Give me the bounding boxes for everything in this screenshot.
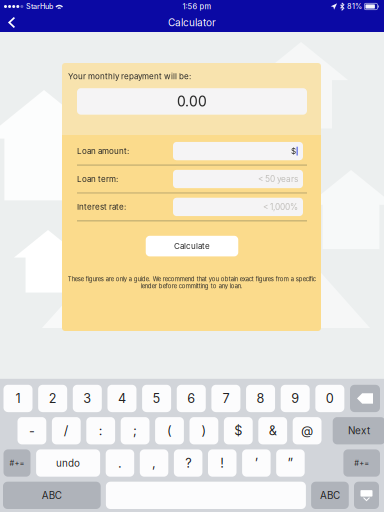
button[interactable]: ’ [242,449,271,477]
button[interactable]: @ [293,417,321,444]
staticText: : [99,423,103,438]
staticText: Loan term: [77,174,118,184]
button[interactable]: ? [174,449,202,477]
button[interactable]: ) [189,417,218,444]
button[interactable]: Back [0,13,28,32]
staticText: 0.00 [177,93,207,110]
staticText: Next [348,425,370,437]
button[interactable]: ABC [3,482,101,509]
staticText: #+= [354,458,369,467]
staticText: StarHub [26,2,53,11]
staticText: . [118,455,122,471]
staticText: @ [301,423,313,438]
staticText: < 1,000% [263,202,298,212]
staticText: #+= [9,458,24,467]
staticText: ! [220,455,224,471]
button[interactable]: / [52,417,81,444]
staticText: $ [291,146,296,156]
staticText: ? [185,455,191,471]
button[interactable]: ( [155,417,184,444]
staticText: ABC [320,489,340,501]
button[interactable]: : [86,417,115,444]
staticText: $ [234,423,242,438]
button[interactable]: Delete [350,385,380,412]
staticText: 2 [49,391,57,406]
staticText: 3 [83,391,91,406]
staticText: ABC [42,489,62,501]
button[interactable]: , [140,449,168,477]
staticText: & [269,423,277,438]
button[interactable]: ; [121,417,149,444]
button[interactable]: ! [208,449,236,477]
button[interactable]: 6 [177,385,206,412]
staticText: 8 [257,391,265,406]
button[interactable]: . [106,449,134,477]
staticText: 4 [118,391,126,406]
button[interactable]: 3 [73,385,102,412]
button[interactable]: #+= [343,449,380,477]
staticText: 81% [347,2,362,11]
staticText: , [152,455,156,471]
button[interactable]: ” [276,449,305,477]
staticText: Interest rate: [77,202,126,212]
staticText: Your monthly repayment will be: [68,71,191,81]
staticText: These figures are only a guide. We recom… [67,275,315,290]
staticText: / [64,423,69,438]
button[interactable]: Calculate [146,236,238,256]
button[interactable]: 7 [211,385,240,412]
button[interactable]: Next [333,417,384,444]
staticText: 1 [15,391,20,406]
staticText: Loan amount: [77,146,129,156]
staticText: < 50 years [258,174,298,184]
button[interactable]: 5 [142,385,171,412]
button[interactable]: - [17,417,46,444]
button[interactable]: 4 [107,385,136,412]
staticText: 5 [153,391,161,406]
button[interactable]: $ [224,417,253,444]
staticText: undo [56,457,80,469]
button[interactable]: Hide keyboard [354,482,379,509]
staticText: 6 [187,391,195,406]
button[interactable]: #+= [3,449,30,477]
staticText: ) [201,423,206,438]
staticText: ( [167,423,172,438]
staticText: ; [133,423,137,438]
button[interactable]: 8 [246,385,275,412]
staticText: 0 [326,391,334,406]
staticText: - [29,423,35,438]
button[interactable]: 2 [38,385,67,412]
staticText: Calculate [174,241,210,251]
staticText: 9 [291,391,299,406]
button[interactable]: undo [36,449,100,477]
staticText: Calculator [168,16,216,29]
staticText: 7 [222,391,229,406]
button[interactable]: 0 [315,385,344,412]
button[interactable]: & [258,417,287,444]
staticText: ” [287,455,293,471]
staticText: 1:56 pm [182,2,211,11]
staticText: ’ [255,455,258,471]
button[interactable]: 1 [3,385,32,412]
button[interactable]: 9 [281,385,310,412]
button[interactable]: ABC [311,482,349,509]
